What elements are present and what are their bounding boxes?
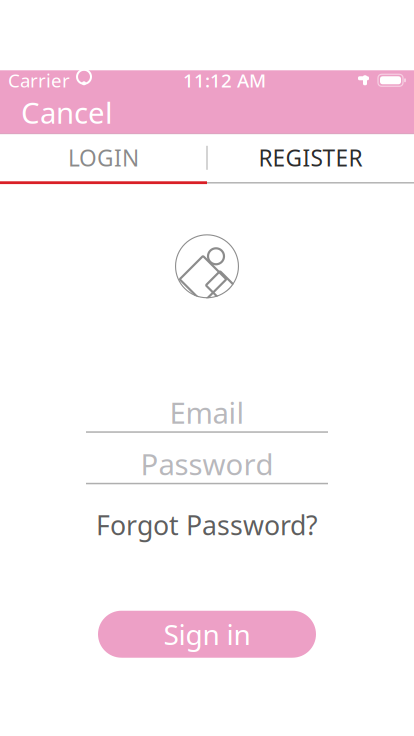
staticText: Password [140,444,273,483]
staticText: Sign in [163,616,250,653]
staticText: Carrier [8,68,70,93]
staticText: REGISTER [258,143,362,173]
staticText: Email [169,393,244,432]
button[interactable]: Sign in [98,611,316,658]
button[interactable]: Cancel [5,85,129,140]
staticText: LOGIN [68,143,139,173]
button[interactable]: Forgot Password? [82,499,332,551]
button[interactable]: LOGIN [0,134,207,181]
staticText: 11:12 AM [183,68,266,93]
staticText: Forgot Password? [96,507,318,543]
button[interactable]: REGISTER [207,134,414,181]
staticText: Cancel [21,93,113,132]
